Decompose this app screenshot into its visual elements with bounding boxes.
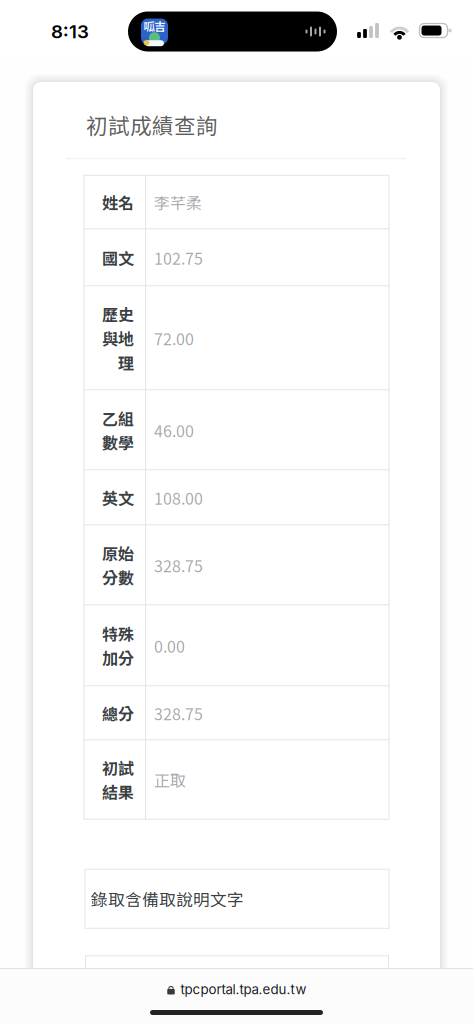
staticText: 數學 [102,431,134,454]
staticText: 理 [118,351,134,374]
staticText: 72.00 [154,327,194,350]
staticText: 0.00 [154,634,185,657]
staticText: 乙組 [102,407,134,430]
staticText: 分數 [102,566,134,589]
staticText: 結果 [102,780,134,803]
staticText: 國文 [102,246,134,269]
staticText: 呱吉 [143,18,165,34]
staticText: 特殊 [102,622,134,645]
staticText: tpcportal.tpa.edu.tw [180,981,306,997]
staticText: 108.00 [154,486,203,509]
staticText: 李芊柔 [154,191,202,214]
staticText: 8:13 [51,20,89,43]
button[interactable]: tpcportal.tpa.edu.tw [0,975,473,1003]
staticText: 姓名 [102,191,134,214]
staticText: 46.00 [154,419,194,442]
staticText: 328.75 [154,554,203,577]
staticText: 102.75 [154,246,203,269]
staticText: 正取 [154,768,186,791]
staticText: 初試成績查詢 [86,109,218,140]
staticText: 英文 [102,486,134,509]
staticText: 加分 [102,646,134,669]
staticText: 歷史 [102,302,134,326]
staticText: 原始 [102,542,134,565]
staticText: 與地 [102,327,134,350]
staticText: 錄取含備取說明文字 [91,887,244,911]
staticText: 總分 [102,702,134,725]
staticText: 328.75 [154,702,203,725]
staticText: 初試 [102,756,134,779]
